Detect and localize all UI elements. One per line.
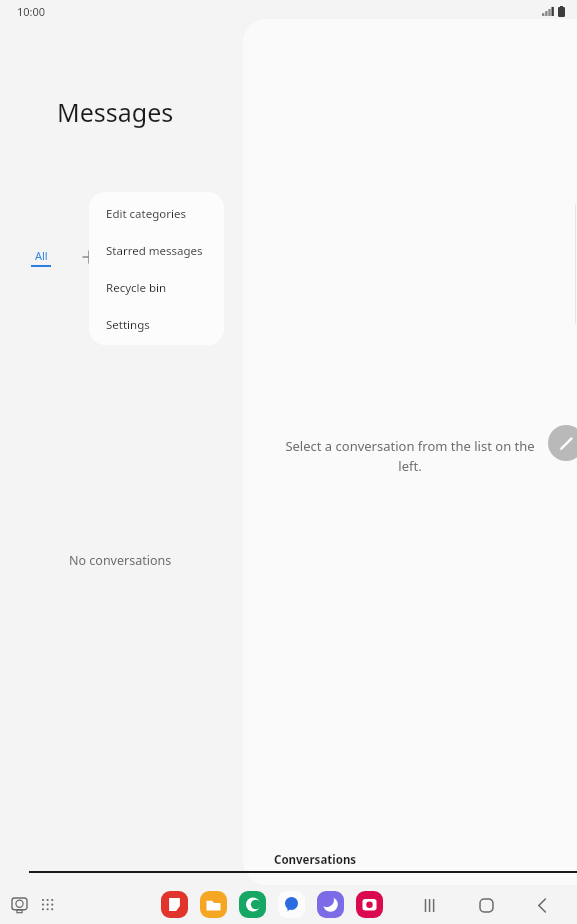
staticText: No conversations [69,552,172,569]
button[interactable]: Recent apps [6,892,32,918]
button[interactable]: Conversations [27,852,577,873]
button[interactable]: Home [471,890,501,920]
button[interactable]: Recents [415,890,445,920]
button[interactable]: Recycle bin [89,269,224,306]
button[interactable]: Back [527,890,557,920]
staticText: Conversations [274,852,357,868]
button[interactable]: Compose new message [548,425,577,461]
button[interactable]: Apps [35,892,61,918]
button[interactable]: All [22,245,60,270]
staticText: Edit categories [106,206,186,222]
staticText: Select a conversation from the list on t… [281,437,539,475]
staticText: 10:00 [17,4,46,19]
staticText: Settings [106,317,150,333]
staticText: Recycle bin [106,280,167,296]
button[interactable]: Camera [356,891,383,918]
button[interactable]: Edit categories [89,195,224,232]
staticText: All [35,248,48,263]
button[interactable]: Starred messages [89,232,224,269]
staticText: Messages [57,95,174,129]
button[interactable]: Messages [278,891,305,918]
button[interactable]: Settings [89,306,224,343]
button[interactable]: Add category [76,244,102,270]
staticText: Starred messages [106,243,203,259]
button[interactable]: Internet [317,891,344,918]
button[interactable]: Contacts [239,891,266,918]
button[interactable]: My Files [200,891,227,918]
button[interactable]: Notes [161,891,188,918]
